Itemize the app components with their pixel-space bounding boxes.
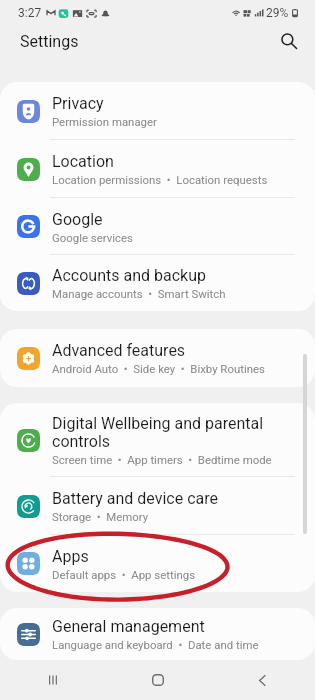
staticText: Privacy [52, 94, 104, 113]
staticText: Google [52, 210, 103, 229]
staticText: Advanced features [52, 341, 186, 360]
button[interactable]: Location [0, 140, 315, 198]
button[interactable]: Home [105, 660, 210, 700]
staticText: Location [52, 152, 114, 171]
staticText: Location permissions • Location requests [52, 173, 268, 186]
button[interactable]: Apps [0, 535, 315, 592]
staticText: Accounts and backup [52, 266, 206, 285]
button[interactable]: Privacy [0, 82, 315, 140]
staticText: Apps [52, 547, 89, 566]
button[interactable]: Battery and device care [0, 477, 315, 535]
staticText: 29% [266, 6, 289, 20]
staticText: Digital Wellbeing and parental controls [52, 414, 264, 451]
button[interactable]: Google [0, 198, 315, 255]
button[interactable]: Digital Wellbeing and parental controls [0, 403, 315, 477]
button[interactable]: Accounts and backup [0, 255, 315, 311]
button[interactable]: Back [210, 660, 315, 700]
staticText: Manage accounts • Smart Switch [52, 287, 226, 300]
button[interactable]: Advanced features [0, 329, 315, 387]
button[interactable]: General management [0, 608, 315, 660]
button[interactable]: Search [277, 29, 301, 53]
staticText: Storage • Memory [52, 510, 149, 523]
staticText: Screen time • App timers • Bedtime mode [52, 453, 272, 466]
button[interactable]: Recent apps [0, 660, 105, 700]
staticText: Android Auto • Side key • Bixby Routines [52, 362, 265, 375]
staticText: Permission manager [52, 115, 157, 128]
staticText: Language and keyboard • Date and time [52, 638, 259, 651]
staticText: Settings [20, 32, 79, 51]
staticText: 3:27 [18, 6, 42, 20]
staticText: Google services [52, 231, 133, 244]
staticText: Battery and device care [52, 489, 218, 508]
staticText: Default apps • App settings [52, 568, 196, 581]
staticText: General management [52, 617, 205, 636]
